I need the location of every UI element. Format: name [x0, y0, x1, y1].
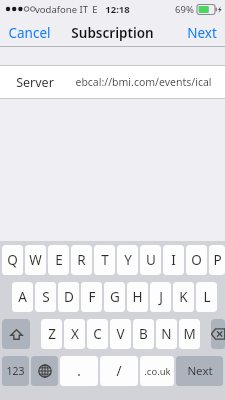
button[interactable]: X [64, 319, 85, 349]
staticText: . [77, 362, 81, 380]
button[interactable]: . [60, 356, 98, 386]
staticText: P [213, 251, 222, 269]
staticText: Z [48, 325, 56, 343]
staticText: S [42, 288, 50, 306]
button[interactable]: 123 [2, 356, 29, 386]
staticText: L [203, 288, 211, 306]
staticText: / [116, 362, 122, 380]
button[interactable]: J [150, 282, 171, 312]
button[interactable]: / [100, 356, 138, 386]
staticText: T [101, 251, 109, 269]
button[interactable]: W [25, 245, 46, 275]
staticText: O [191, 251, 202, 269]
staticText: W [29, 251, 42, 269]
staticText: V [116, 325, 125, 343]
button[interactable]: G [104, 282, 125, 312]
staticText: E [55, 251, 63, 269]
staticText: Next [187, 24, 217, 42]
button[interactable]: Next [176, 356, 223, 386]
button[interactable]: O [186, 245, 207, 275]
button[interactable]: E [48, 245, 69, 275]
staticText: M [183, 325, 196, 343]
button[interactable]: Z [41, 319, 62, 349]
button[interactable]: .co.uk [140, 356, 174, 386]
staticText: Cancel [8, 24, 51, 42]
staticText: N [161, 325, 172, 343]
button[interactable]: C [87, 319, 108, 349]
button[interactable]: K [173, 282, 194, 312]
staticText: E [92, 3, 98, 16]
button[interactable]: Shift [2, 319, 30, 349]
staticText: 123 [6, 364, 25, 378]
button[interactable]: Next [179, 20, 225, 46]
staticText: Server [16, 74, 54, 91]
staticText: K [179, 288, 188, 306]
button[interactable]: Server [0, 66, 225, 98]
button[interactable]: R [71, 245, 92, 275]
staticText: B [139, 325, 148, 343]
staticText: F [88, 288, 96, 306]
button[interactable]: V [110, 319, 131, 349]
button[interactable]: Q [2, 245, 23, 275]
staticText: R [77, 251, 86, 269]
button[interactable]: Change keyboard [31, 356, 58, 386]
button[interactable]: Backspace [211, 319, 225, 349]
staticText: I [171, 251, 176, 269]
button[interactable]: B [133, 319, 154, 349]
staticText: A [18, 288, 27, 306]
button[interactable]: U [140, 245, 161, 275]
button[interactable]: A [12, 282, 33, 312]
button[interactable]: Cancel [0, 20, 59, 46]
button[interactable]: H [127, 282, 148, 312]
staticText: J [159, 288, 163, 306]
button[interactable]: L [196, 282, 217, 312]
staticText: 12:18 [105, 3, 130, 16]
button[interactable]: T [94, 245, 115, 275]
button[interactable]: N [156, 319, 177, 349]
button[interactable]: F [81, 282, 102, 312]
staticText: Next [187, 363, 213, 379]
staticText: X [71, 325, 79, 343]
button[interactable]: I [163, 245, 184, 275]
staticText: G [110, 288, 120, 306]
staticText: U [146, 251, 156, 269]
button[interactable]: Y [117, 245, 138, 275]
staticText: Y [124, 251, 132, 269]
staticText: Subscription [71, 24, 154, 42]
staticText: 69% [175, 3, 194, 16]
staticText: H [132, 288, 143, 306]
button[interactable]: M [179, 319, 200, 349]
button[interactable]: P [209, 245, 225, 275]
button[interactable]: D [58, 282, 79, 312]
staticText: ebcal://bmi.com/events/ical [75, 75, 212, 89]
staticText: D [64, 288, 74, 306]
staticText: C [93, 325, 102, 343]
staticText: .co.uk [144, 365, 171, 378]
button[interactable]: S [35, 282, 56, 312]
staticText: Q [7, 251, 18, 269]
staticText: vodafone IT [35, 3, 88, 16]
